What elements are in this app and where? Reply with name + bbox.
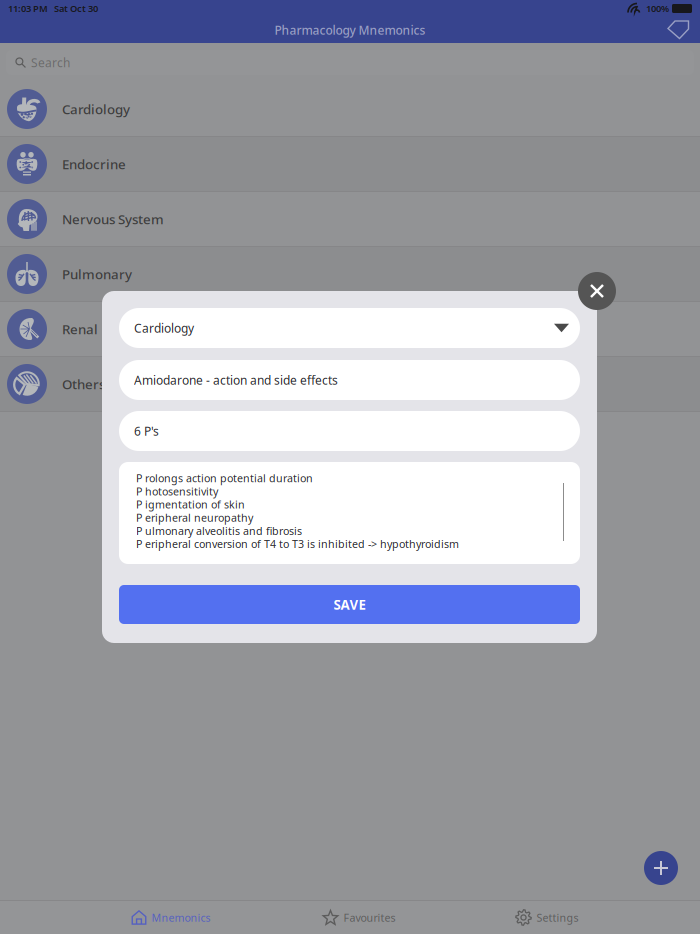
staticText: Endocrine — [62, 155, 126, 173]
button[interactable]: Pulmonary — [0, 247, 700, 302]
button[interactable]: SAVE — [119, 585, 580, 624]
staticText: Renal — [62, 320, 98, 338]
button[interactable]: Endocrine — [0, 137, 700, 192]
staticText: Search — [31, 54, 70, 70]
staticText: Pharmacology Mnemonics — [274, 22, 425, 38]
button[interactable]: Others — [0, 357, 700, 412]
staticText: Cardiology — [134, 320, 194, 336]
staticText: Cardiology — [62, 100, 130, 118]
staticText: SAVE — [333, 596, 365, 613]
staticText: P eripheral neuropathy — [136, 510, 253, 525]
button[interactable]: Renal — [0, 302, 700, 357]
button[interactable]: Close — [578, 272, 616, 310]
staticText: P igmentation of skin — [136, 497, 245, 511]
button[interactable]: Cardiology — [0, 82, 700, 137]
staticText: 100% — [644, 2, 669, 15]
button[interactable]: Mnemonics — [77, 901, 265, 934]
staticText: Sat Oct 30 — [48, 2, 98, 15]
button[interactable]: Add mnemonic — [636, 843, 686, 893]
staticText: P hotosensitivity — [136, 484, 218, 498]
staticText: 6 P's — [134, 423, 159, 439]
staticText: Nervous System — [62, 210, 164, 228]
staticText: Settings — [536, 910, 578, 925]
button[interactable]: Favourites — [265, 901, 453, 934]
staticText: P ulmonary alveolitis and fibrosis — [136, 524, 302, 538]
button[interactable]: Settings — [453, 901, 641, 934]
button[interactable]: Tags — [661, 14, 696, 46]
staticText: P eripheral conversion of T4 to T3 is in… — [136, 537, 459, 551]
button[interactable]: Cardiology — [119, 308, 580, 348]
staticText: 11:03 PM — [8, 2, 48, 15]
staticText: P rolongs action potential duration — [136, 471, 313, 485]
staticText: Amiodarone - action and side effects — [134, 372, 338, 388]
staticText: Others — [62, 375, 105, 393]
button[interactable]: Nervous System — [0, 192, 700, 247]
staticText: Favourites — [343, 910, 395, 925]
staticText: Mnemonics — [151, 910, 210, 925]
staticText: Pulmonary — [62, 265, 132, 283]
